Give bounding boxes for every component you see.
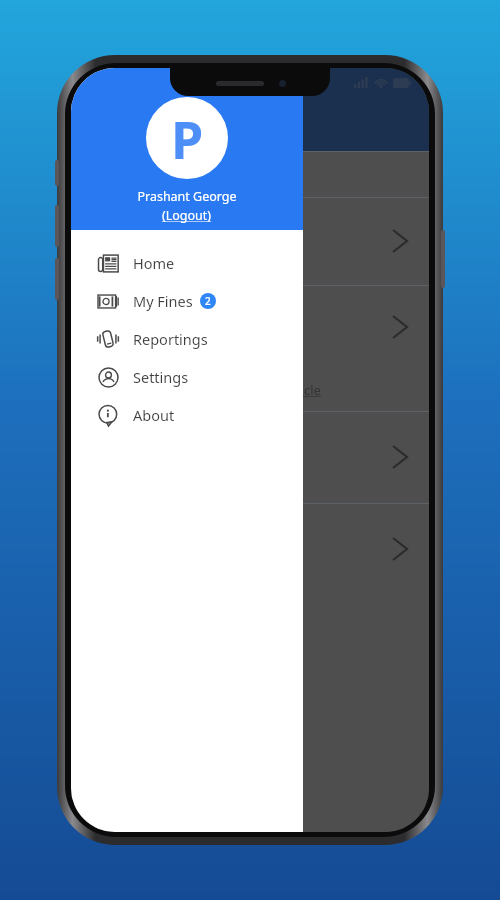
staticText: Reportings (133, 329, 208, 349)
staticText: P (171, 103, 204, 174)
staticText: 2 (205, 294, 211, 308)
button[interactable]: About (71, 396, 303, 434)
staticText: Settings (133, 367, 189, 387)
button[interactable]: Settings (71, 358, 303, 396)
staticText: (Logout) (162, 207, 212, 224)
staticText: My Fines (133, 291, 193, 311)
staticText: Prashant George (137, 188, 237, 205)
button[interactable]: My Fines (71, 282, 303, 320)
button[interactable]: (Logout) (162, 207, 212, 224)
staticText: About (133, 405, 175, 425)
button[interactable]: Home (71, 244, 303, 282)
staticText: Home (133, 253, 175, 273)
staticText: Report Another Vehicle (180, 381, 321, 399)
button[interactable]: Reportings (71, 320, 303, 358)
